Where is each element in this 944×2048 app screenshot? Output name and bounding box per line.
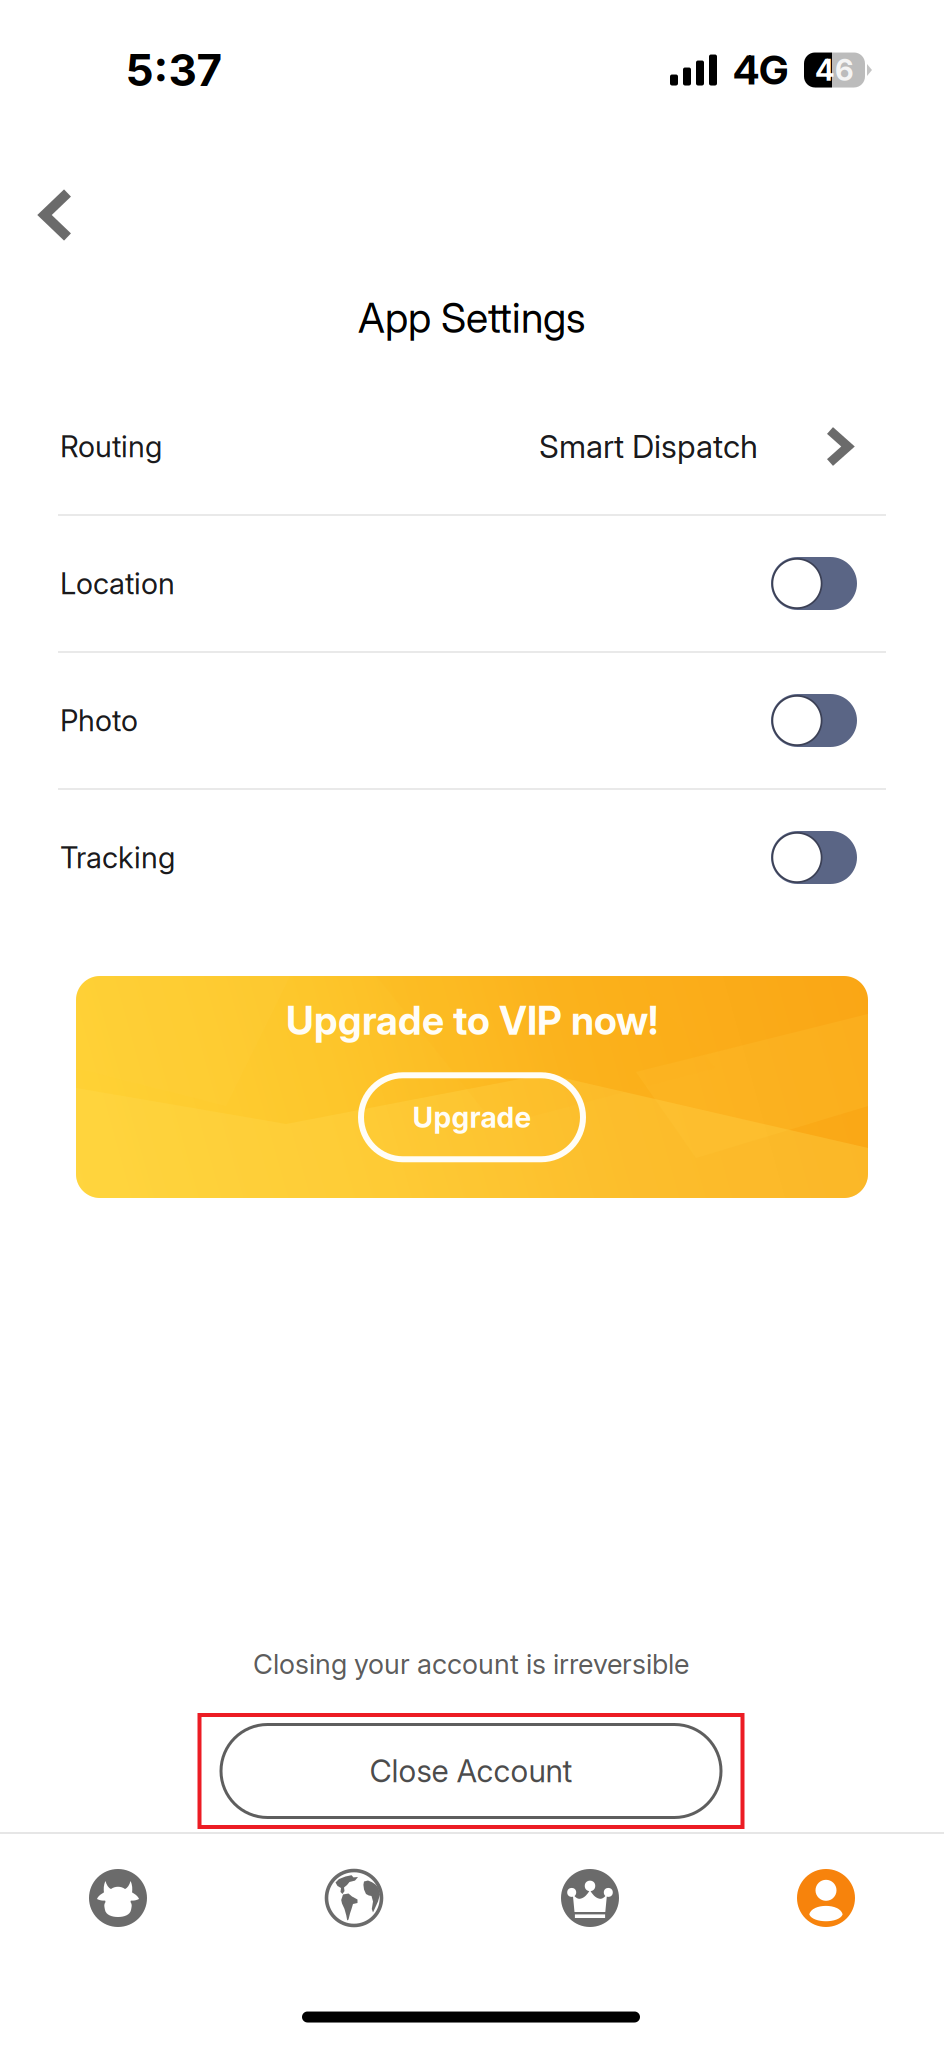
button[interactable]: Upgrade to VIP now!	[76, 976, 868, 1198]
staticText: Location	[60, 566, 175, 601]
staticText: Tracking	[60, 840, 175, 875]
staticText: Closing your account is irreversible	[253, 1647, 689, 1681]
staticText: Routing	[60, 429, 162, 464]
button[interactable]: Livestock	[0, 1869, 236, 1927]
staticText: Close Account	[369, 1752, 572, 1789]
staticText: 4	[815, 52, 835, 88]
staticText: 6	[835, 52, 854, 88]
staticText: Photo	[60, 703, 138, 738]
button[interactable]: Routing	[0, 379, 944, 516]
button[interactable]: Close Account	[199, 1715, 742, 1827]
staticText: Smart Dispatch	[539, 427, 758, 466]
staticText: Upgrade to VIP now!	[286, 997, 658, 1044]
button[interactable]: Profile	[708, 1869, 944, 1927]
staticText: 5:37	[125, 43, 222, 97]
button[interactable]: Explore	[236, 1869, 472, 1927]
button[interactable]: Location	[0, 516, 944, 653]
staticText: 4G	[733, 46, 788, 94]
staticText: Upgrade	[412, 1100, 531, 1135]
staticText: App Settings	[358, 293, 586, 343]
button[interactable]: VIP	[472, 1869, 708, 1927]
button[interactable]: Tracking	[0, 790, 944, 927]
button[interactable]: Photo	[0, 653, 944, 790]
button[interactable]: Back	[10, 162, 101, 268]
